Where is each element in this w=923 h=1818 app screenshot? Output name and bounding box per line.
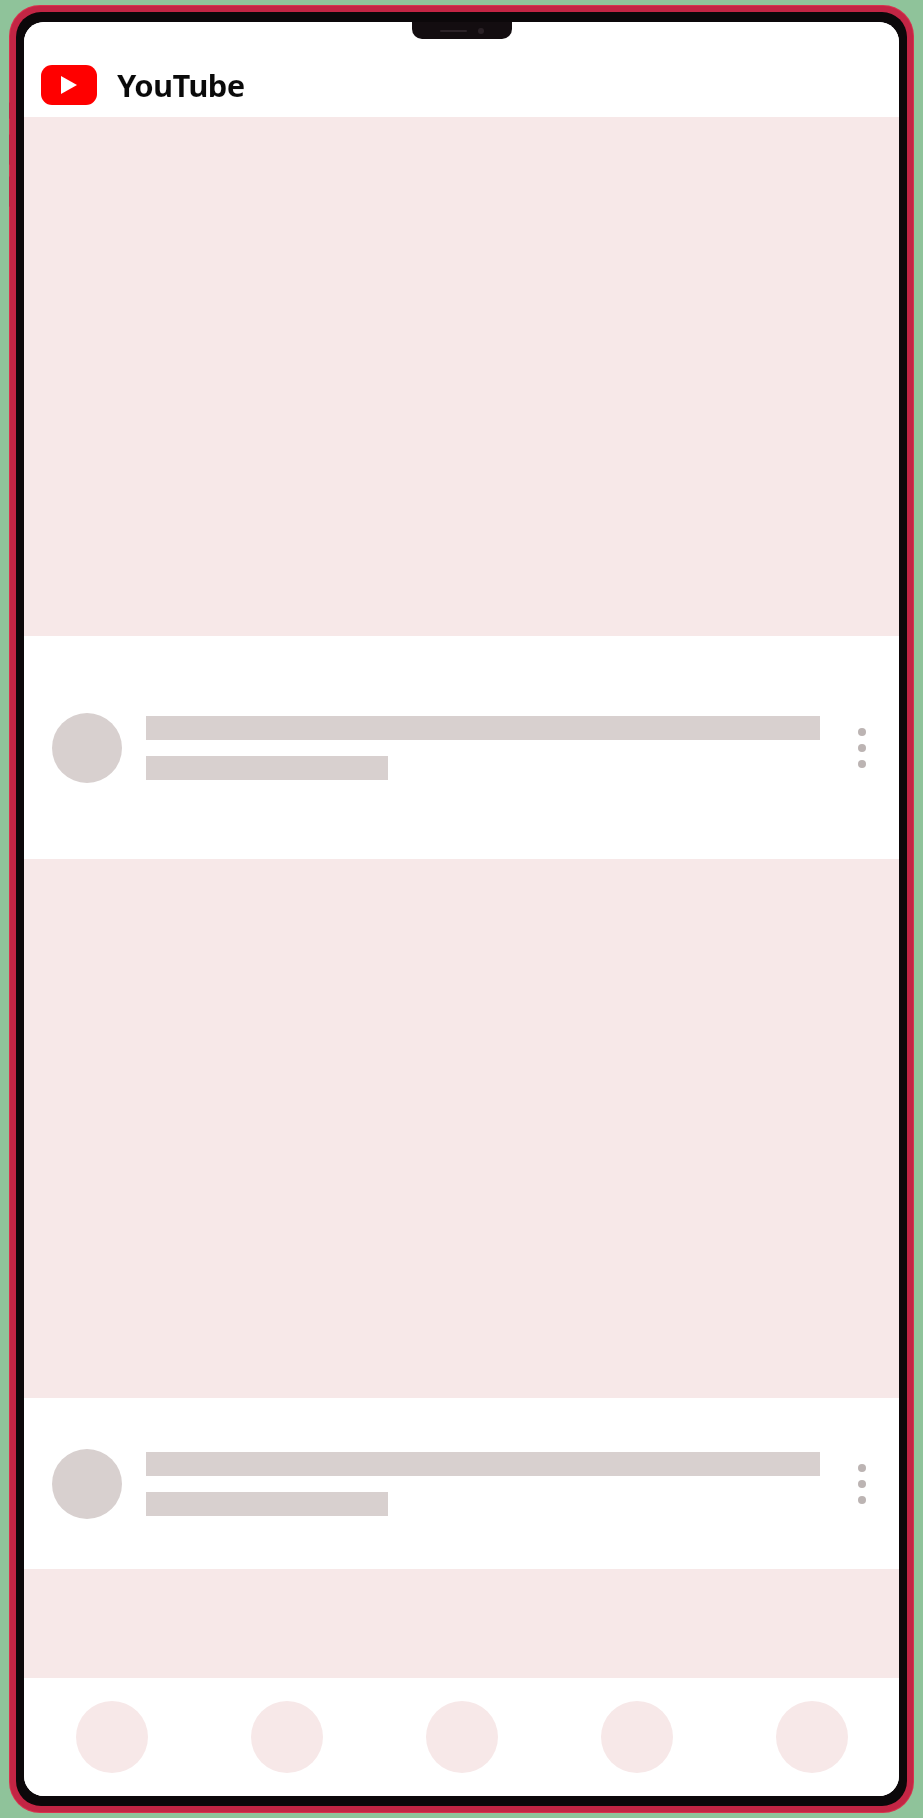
button[interactable]: Home	[24, 1678, 199, 1796]
button[interactable]: Library	[724, 1678, 899, 1796]
button[interactable]: Create	[374, 1678, 549, 1796]
button[interactable]: More options	[24, 636, 899, 859]
button[interactable]: YouTube home	[41, 65, 97, 105]
button[interactable]: More options	[841, 1455, 883, 1513]
button[interactable]: Shorts	[199, 1678, 374, 1796]
staticText: YouTube	[117, 64, 245, 106]
button[interactable]: Subscriptions	[549, 1678, 724, 1796]
button[interactable]: More options	[24, 1398, 899, 1569]
button[interactable]: More options	[841, 719, 883, 777]
